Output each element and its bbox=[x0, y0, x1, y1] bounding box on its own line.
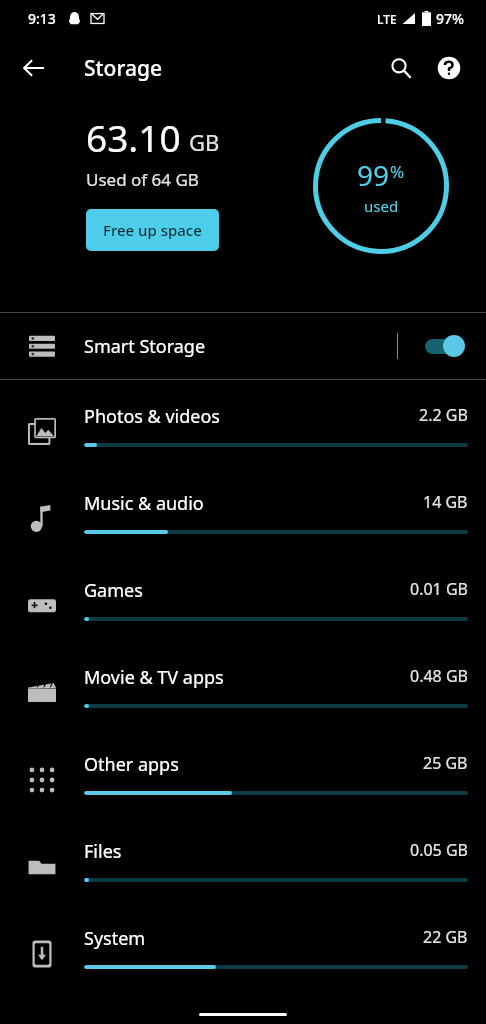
button[interactable]: Movie & TV apps bbox=[0, 649, 486, 736]
staticText: Movie & TV apps bbox=[84, 665, 224, 690]
staticText: 0.01 GB bbox=[410, 578, 468, 600]
staticText: 25 GB bbox=[423, 752, 468, 774]
button[interactable]: Smart Storage toggle bbox=[398, 313, 486, 379]
staticText: used bbox=[364, 196, 399, 216]
staticText: Music & audio bbox=[84, 491, 204, 516]
button[interactable]: System bbox=[0, 910, 486, 997]
staticText: 0.48 GB bbox=[410, 665, 468, 687]
staticText: Smart Storage bbox=[84, 334, 397, 359]
staticText: Games bbox=[84, 578, 143, 603]
staticText: Other apps bbox=[84, 752, 179, 777]
staticText: Used of 64 GB bbox=[86, 168, 199, 191]
staticText: 63.10 bbox=[86, 112, 181, 162]
staticText: GB bbox=[189, 127, 220, 157]
staticText: Storage bbox=[84, 54, 162, 83]
button[interactable]: Search bbox=[378, 45, 424, 91]
button[interactable]: Games bbox=[0, 562, 486, 649]
button[interactable]: Photos & videos bbox=[0, 388, 486, 475]
button[interactable]: Free up space bbox=[86, 209, 219, 251]
staticText: Free up space bbox=[103, 220, 202, 240]
staticText: 22 GB bbox=[423, 926, 468, 948]
button[interactable]: Smart Storage bbox=[0, 313, 486, 379]
staticText: Files bbox=[84, 839, 122, 864]
button[interactable]: Files bbox=[0, 823, 486, 910]
staticText: 14 GB bbox=[423, 491, 468, 513]
staticText: 2.2 GB bbox=[419, 404, 468, 426]
button[interactable]: Help bbox=[426, 45, 472, 91]
staticText: 9:13 bbox=[28, 9, 56, 28]
staticText: 99 bbox=[357, 156, 390, 194]
staticText: Photos & videos bbox=[84, 404, 220, 429]
staticText: 0.05 GB bbox=[410, 839, 468, 861]
button[interactable]: Back bbox=[10, 44, 58, 92]
staticText: 97% bbox=[436, 9, 464, 28]
button[interactable]: Other apps bbox=[0, 736, 486, 823]
staticText: System bbox=[84, 926, 146, 951]
staticText: % bbox=[390, 160, 405, 183]
staticText: LTE bbox=[377, 11, 397, 27]
button[interactable]: Music & audio bbox=[0, 475, 486, 562]
